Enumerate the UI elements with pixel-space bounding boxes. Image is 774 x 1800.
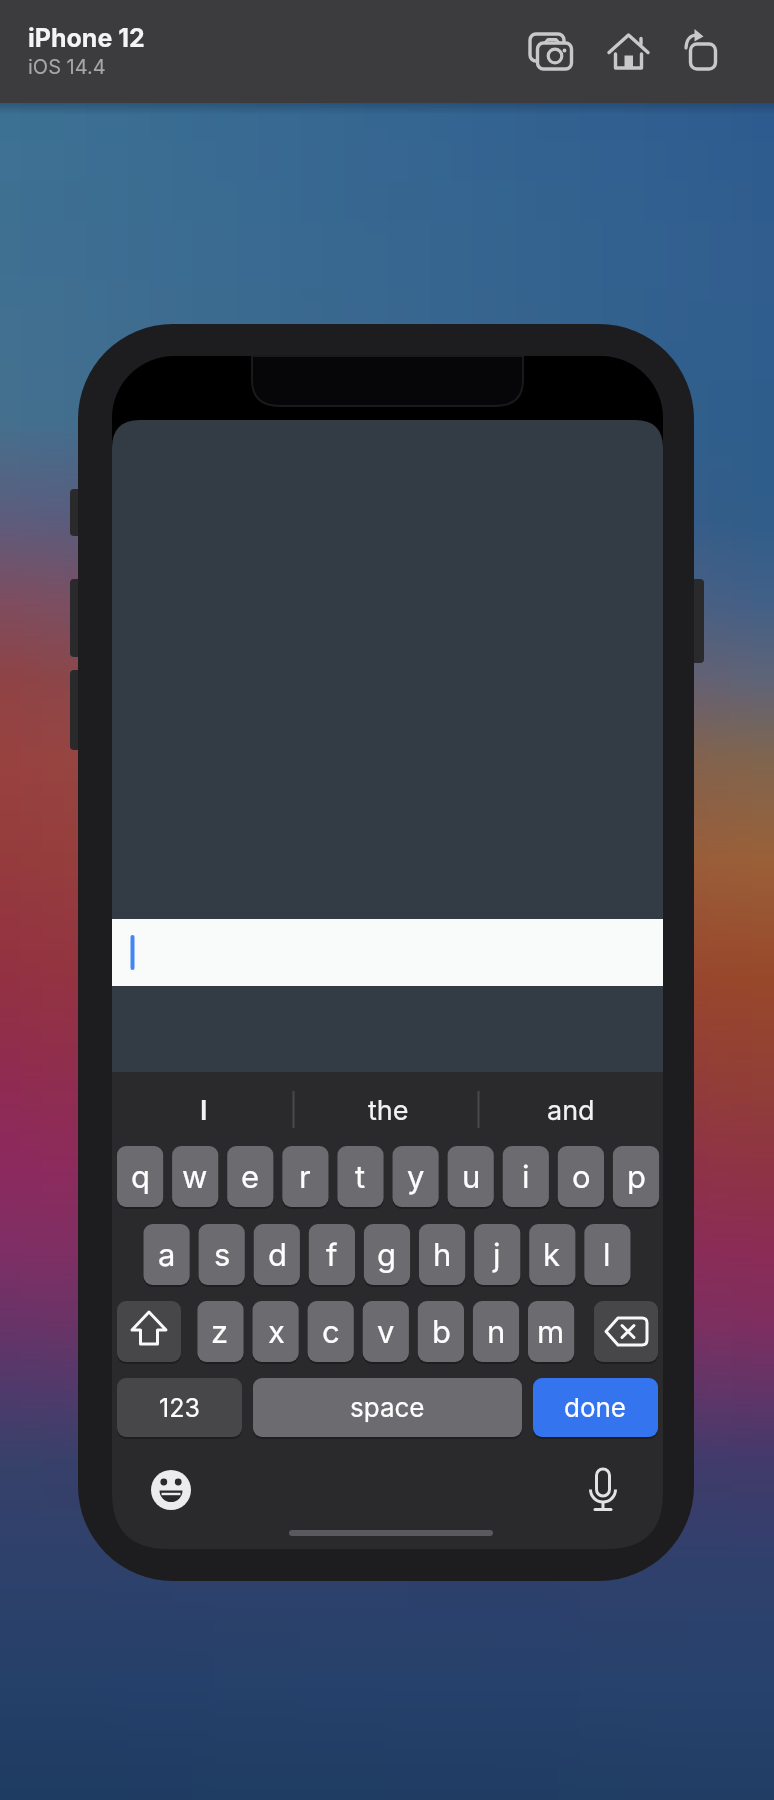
staticText: space [350, 1392, 425, 1423]
staticText: e [241, 1158, 260, 1196]
staticText: j [493, 1236, 501, 1274]
button[interactable]: s [199, 1224, 245, 1285]
button[interactable] [579, 1466, 627, 1514]
button[interactable]: a [144, 1224, 190, 1285]
button[interactable]: c [308, 1301, 354, 1362]
staticText: y [407, 1158, 425, 1196]
button[interactable]: h [419, 1224, 465, 1285]
button[interactable] [676, 28, 724, 76]
button[interactable]: p [613, 1146, 659, 1207]
button[interactable] [594, 1301, 658, 1362]
staticText: s [214, 1236, 231, 1274]
staticText: m [537, 1313, 565, 1351]
button[interactable]: r [282, 1146, 328, 1207]
staticText: i [522, 1158, 530, 1196]
staticText: p [627, 1158, 646, 1196]
staticText: r [299, 1158, 311, 1196]
button[interactable]: z [197, 1301, 243, 1362]
staticText: n [487, 1313, 506, 1351]
button[interactable] [117, 1301, 181, 1362]
button[interactable]: u [448, 1146, 494, 1207]
button[interactable]: d [254, 1224, 300, 1285]
staticText: u [462, 1158, 481, 1196]
staticText: k [543, 1236, 561, 1274]
staticText: I [200, 1094, 208, 1127]
button[interactable]: done [533, 1378, 658, 1437]
button[interactable]: w [172, 1146, 218, 1207]
button[interactable]: v [363, 1301, 409, 1362]
button[interactable]: y [393, 1146, 439, 1207]
button[interactable]: b [418, 1301, 464, 1362]
button[interactable]: k [529, 1224, 575, 1285]
staticText: f [326, 1236, 338, 1274]
button[interactable]: t [337, 1146, 383, 1207]
button[interactable]: l [584, 1224, 630, 1285]
staticText: 123 [159, 1393, 200, 1423]
staticText: c [322, 1313, 340, 1351]
button[interactable]: m [528, 1301, 574, 1362]
staticText: the [368, 1094, 409, 1127]
button[interactable]: I [112, 1085, 296, 1135]
button[interactable] [112, 919, 663, 986]
button[interactable]: f [309, 1224, 355, 1285]
button[interactable] [604, 28, 652, 76]
staticText: iPhone 12 [28, 23, 145, 53]
staticText: l [603, 1236, 611, 1274]
staticText: done [564, 1392, 627, 1423]
button[interactable]: j [474, 1224, 520, 1285]
button[interactable]: and [479, 1085, 663, 1135]
staticText: g [377, 1236, 397, 1274]
button[interactable]: i [503, 1146, 549, 1207]
staticText: iOS 14.4 [28, 55, 106, 79]
staticText: and [547, 1094, 595, 1127]
button[interactable]: q [117, 1146, 163, 1207]
button[interactable]: g [364, 1224, 410, 1285]
button[interactable]: the [296, 1085, 480, 1135]
staticText: w [182, 1158, 208, 1196]
staticText: b [432, 1313, 451, 1351]
button[interactable] [527, 28, 575, 76]
staticText: d [268, 1236, 287, 1274]
button[interactable]: x [253, 1301, 299, 1362]
staticText: z [211, 1313, 229, 1351]
button[interactable] [147, 1466, 195, 1514]
staticText: t [355, 1158, 366, 1196]
staticText: h [433, 1236, 452, 1274]
button[interactable]: space [253, 1378, 522, 1437]
button[interactable]: e [227, 1146, 273, 1207]
button[interactable]: 123 [117, 1378, 242, 1437]
staticText: a [158, 1236, 176, 1274]
staticText: q [131, 1158, 150, 1196]
button[interactable]: n [473, 1301, 519, 1362]
staticText: o [572, 1158, 591, 1196]
button[interactable]: o [558, 1146, 604, 1207]
staticText: v [377, 1313, 395, 1351]
staticText: x [268, 1313, 285, 1351]
